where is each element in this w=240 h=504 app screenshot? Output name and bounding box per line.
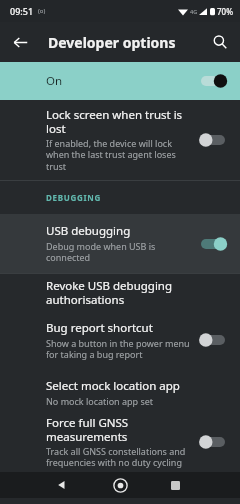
- staticText: No mock location app set: [46, 395, 154, 407]
- staticText: Show a button in the power menu for taki…: [46, 337, 192, 361]
- button[interactable]: Lock screen when trust is lost: [0, 100, 240, 180]
- button[interactable]: Back: [51, 474, 73, 496]
- staticText: DEBUGGING: [46, 192, 101, 203]
- staticText: USB debugging: [46, 223, 131, 239]
- button[interactable]: Toggle: [198, 434, 228, 450]
- staticText: Select mock location app: [46, 378, 180, 394]
- button[interactable]: Toggle: [198, 132, 228, 148]
- button[interactable]: Bug report shortcut: [0, 310, 240, 370]
- staticText: If enabled, the device will lock when th…: [46, 137, 192, 173]
- staticText: Revoke USB debugging authorisations: [46, 278, 228, 307]
- button[interactable]: On: [0, 62, 240, 100]
- staticText: 09:51: [10, 5, 34, 17]
- button[interactable]: Toggle: [198, 236, 228, 252]
- button[interactable]: Recents: [164, 474, 186, 496]
- staticText: (o): [38, 7, 46, 15]
- staticText: Lock screen when trust is lost: [46, 107, 192, 136]
- staticText: Debug mode when USB is connected: [46, 240, 192, 264]
- button[interactable]: Toggle: [198, 73, 228, 89]
- button[interactable]: Select mock location app: [0, 370, 240, 414]
- staticText: 70%: [217, 6, 233, 17]
- staticText: Bug report shortcut: [46, 320, 153, 336]
- staticText: Track all GNSS constellations and freque…: [46, 445, 192, 469]
- button[interactable]: Toggle: [198, 332, 228, 348]
- button[interactable]: Revoke USB debugging authorisations: [0, 274, 240, 310]
- button[interactable]: Back: [8, 30, 32, 54]
- button[interactable]: Home: [109, 474, 131, 496]
- button[interactable]: Force full GNSS measurements: [0, 414, 240, 470]
- staticText: 4G: [190, 8, 198, 15]
- staticText: On: [46, 73, 198, 89]
- staticText: Force full GNSS measurements: [46, 415, 192, 444]
- staticText: Developer options: [48, 33, 176, 52]
- button[interactable]: USB debugging: [0, 214, 240, 273]
- button[interactable]: Search: [208, 30, 232, 54]
